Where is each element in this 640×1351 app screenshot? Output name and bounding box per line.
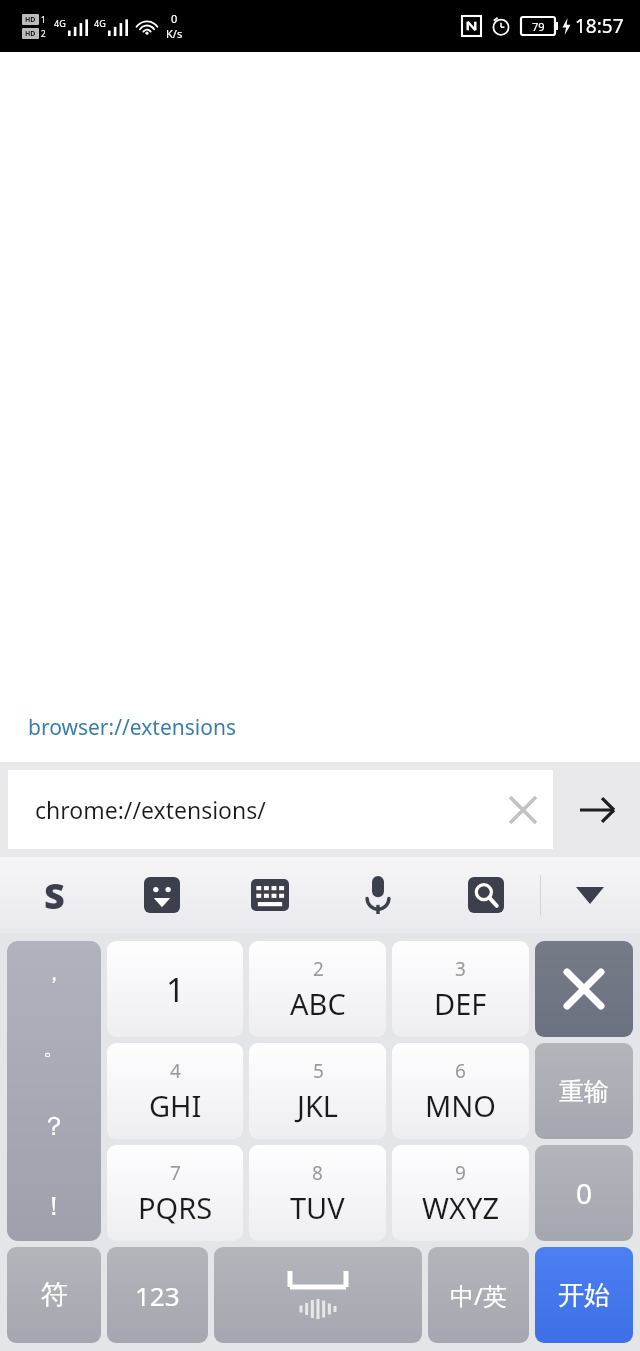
staticText: ！ [41,1190,67,1223]
staticText: ， [43,959,65,987]
button[interactable]: Emoji [108,857,216,933]
button[interactable]: 中/英 [428,1247,529,1343]
staticText: 1 [166,967,185,1012]
staticText: MNO [425,1086,496,1125]
staticText: ABC [290,984,346,1023]
staticText: 6 [455,1058,466,1084]
button[interactable]: 开始 [535,1247,633,1343]
button[interactable]: Keyboard layout [216,857,324,933]
button[interactable]: Search [432,857,540,933]
staticText: 开始 [558,1279,610,1312]
staticText: 9 [455,1160,466,1186]
staticText: WXYZ [422,1188,499,1227]
staticText: 5 [313,1058,324,1084]
staticText: 4G [94,17,106,29]
staticText: HD [25,15,36,25]
button[interactable]: Hide keyboard [540,857,640,933]
staticText: 重输 [559,1076,609,1107]
staticText: DEF [434,984,487,1023]
button[interactable]: 3 [392,941,529,1037]
staticText: HD [25,29,36,39]
staticText: GHI [149,1086,202,1125]
staticText: 4 [170,1058,181,1084]
staticText: 18:57 [575,13,624,39]
button[interactable]: 123 [107,1247,208,1343]
staticText: TUV [290,1188,345,1227]
staticText: S [44,871,65,920]
staticText: 0 [171,11,178,26]
staticText: 。 [43,1034,65,1062]
button[interactable]: 4 [107,1043,243,1139]
button[interactable]: 0 [535,1145,633,1241]
staticText: 2 [41,28,46,39]
staticText: K/s [166,26,183,41]
button[interactable]: Delete [535,941,633,1037]
button[interactable]: browser://extensions [28,713,236,742]
staticText: 1 [41,14,46,25]
staticText: 7 [170,1160,181,1186]
staticText: 8 [312,1160,323,1186]
button[interactable]: 9 [392,1145,529,1241]
button[interactable]: Go [553,762,640,857]
button[interactable]: 1 [107,941,243,1037]
staticText: ？ [41,1110,67,1143]
staticText: 3 [455,956,466,982]
button[interactable]: Voice input [324,857,432,933]
staticText: 123 [135,1278,180,1313]
button[interactable]: 5 [249,1043,386,1139]
button[interactable]: 2 [249,941,386,1037]
staticText: PQRS [138,1188,213,1227]
button[interactable]: Sogou input method [0,857,108,933]
button[interactable]: chrome://extensions/ [8,770,553,849]
staticText: 0 [576,1174,593,1212]
button[interactable]: Space [214,1247,422,1343]
button[interactable]: 重输 [535,1043,633,1139]
staticText: chrome://extensions/ [35,794,493,825]
staticText: 79 [532,19,545,34]
staticText: 2 [313,956,324,982]
staticText: 4G [54,17,66,29]
button[interactable]: 7 [107,1145,243,1241]
button[interactable]: 6 [392,1043,529,1139]
button[interactable]: 8 [249,1145,386,1241]
staticText: 中/英 [450,1279,507,1312]
staticText: JKL [297,1086,339,1125]
button[interactable]: Clear [493,780,553,840]
button[interactable]: Punctuation [7,941,101,1241]
staticText: 符 [41,1278,68,1312]
button[interactable]: 符 [7,1247,101,1343]
